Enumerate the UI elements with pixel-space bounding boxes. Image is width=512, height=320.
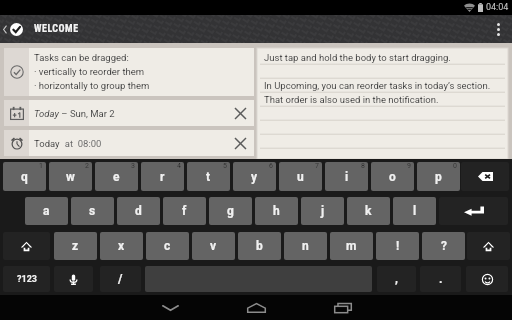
staticText: l: [413, 204, 417, 218]
button[interactable]: w: [49, 162, 92, 191]
staticText: f: [182, 204, 187, 218]
button[interactable]: u: [279, 162, 322, 191]
button[interactable]: ,: [377, 266, 416, 292]
button[interactable]: j: [301, 197, 344, 225]
button[interactable]: Today: [4, 100, 254, 126]
staticText: r: [160, 170, 165, 184]
button[interactable]: Today: [4, 130, 254, 156]
staticText: p: [435, 170, 442, 184]
button[interactable]: x: [100, 232, 143, 260]
button[interactable]: z: [54, 232, 97, 260]
button[interactable]: q: [3, 162, 46, 191]
staticText: Today: [34, 108, 59, 119]
staticText: 5: [223, 162, 227, 170]
staticText: !: [396, 239, 400, 253]
button[interactable]: Backspace: [461, 162, 509, 191]
button[interactable]: f: [163, 197, 206, 225]
staticText: t: [206, 170, 211, 184]
staticText: s: [89, 204, 96, 218]
button[interactable]: t: [187, 162, 230, 191]
staticText: o: [389, 170, 396, 184]
staticText: g: [227, 204, 234, 218]
button[interactable]: ?123: [3, 266, 50, 292]
staticText: m: [346, 239, 357, 253]
staticText: 4: [177, 162, 181, 170]
button[interactable]: Shift: [467, 232, 510, 260]
staticText: h: [273, 204, 280, 218]
staticText: ,: [395, 272, 398, 286]
staticText: Just tap and hold the body to start drag…: [264, 52, 491, 105]
staticText: y: [251, 170, 258, 184]
button[interactable]: n: [284, 232, 327, 260]
button[interactable]: i: [325, 162, 368, 191]
button[interactable]: ?: [422, 232, 465, 260]
button[interactable]: d: [117, 197, 160, 225]
staticText: v: [210, 239, 217, 253]
staticText: 3: [131, 162, 135, 170]
button[interactable]: k: [347, 197, 390, 225]
button[interactable]: Remove: [226, 130, 254, 156]
staticText: 8: [361, 162, 365, 170]
staticText: 0: [453, 162, 457, 170]
staticText: 6: [269, 162, 273, 170]
staticText: 2: [85, 162, 89, 170]
button[interactable]: !: [376, 232, 419, 260]
button[interactable]: /: [100, 266, 141, 292]
staticText: – Sun, Mar 2: [59, 108, 115, 119]
staticText: Tasks can be dragged: · vertically to re…: [34, 52, 150, 91]
staticText: Today: [34, 138, 60, 149]
staticText: n: [302, 239, 309, 253]
button[interactable]: p: [417, 162, 460, 191]
button[interactable]: v: [192, 232, 235, 260]
staticText: b: [256, 239, 263, 253]
button[interactable]: o: [371, 162, 414, 191]
staticText: at 08:00: [60, 138, 102, 149]
button[interactable]: Enter: [439, 197, 508, 225]
button[interactable]: h: [255, 197, 298, 225]
staticText: d: [135, 204, 142, 218]
button[interactable]: More options: [484, 15, 512, 43]
staticText: 7: [315, 162, 319, 170]
button[interactable]: r: [141, 162, 184, 191]
button[interactable]: Shift: [3, 232, 50, 260]
staticText: j: [321, 204, 325, 218]
staticText: 04:04: [486, 2, 509, 13]
button[interactable]: c: [146, 232, 189, 260]
button[interactable]: l: [393, 197, 436, 225]
button[interactable]: y: [233, 162, 276, 191]
button[interactable]: Tasks can be dragged: · vertically to re…: [4, 48, 254, 96]
button[interactable]: Navigate up: [0, 15, 30, 43]
button[interactable]: s: [71, 197, 114, 225]
staticText: WELCOME: [34, 23, 79, 35]
button[interactable]: Home: [226, 295, 286, 320]
staticText: x: [118, 239, 125, 253]
button[interactable]: e: [95, 162, 138, 191]
staticText: /: [118, 272, 123, 286]
staticText: k: [365, 204, 372, 218]
staticText: ?123: [17, 274, 37, 285]
button[interactable]: g: [209, 197, 252, 225]
staticText: .: [439, 272, 443, 286]
staticText: z: [72, 239, 79, 253]
button[interactable]: Voice input: [54, 266, 93, 292]
button[interactable]: a: [25, 197, 68, 225]
button[interactable]: .: [420, 266, 461, 292]
staticText: 9: [407, 162, 411, 170]
staticText: e: [113, 170, 120, 184]
button[interactable]: Recent apps: [313, 295, 373, 320]
staticText: 1: [39, 162, 43, 170]
staticText: q: [21, 170, 28, 184]
button[interactable]: Remove: [226, 100, 254, 126]
button[interactable]: Back: [140, 295, 200, 320]
staticText: a: [43, 204, 50, 218]
staticText: i: [345, 170, 349, 184]
staticText: u: [297, 170, 304, 184]
button[interactable]: Emoji: [466, 266, 508, 292]
button[interactable]: b: [238, 232, 281, 260]
staticText: w: [66, 170, 75, 184]
staticText: c: [164, 239, 171, 253]
staticText: ?: [441, 239, 447, 253]
button[interactable]: m: [330, 232, 373, 260]
